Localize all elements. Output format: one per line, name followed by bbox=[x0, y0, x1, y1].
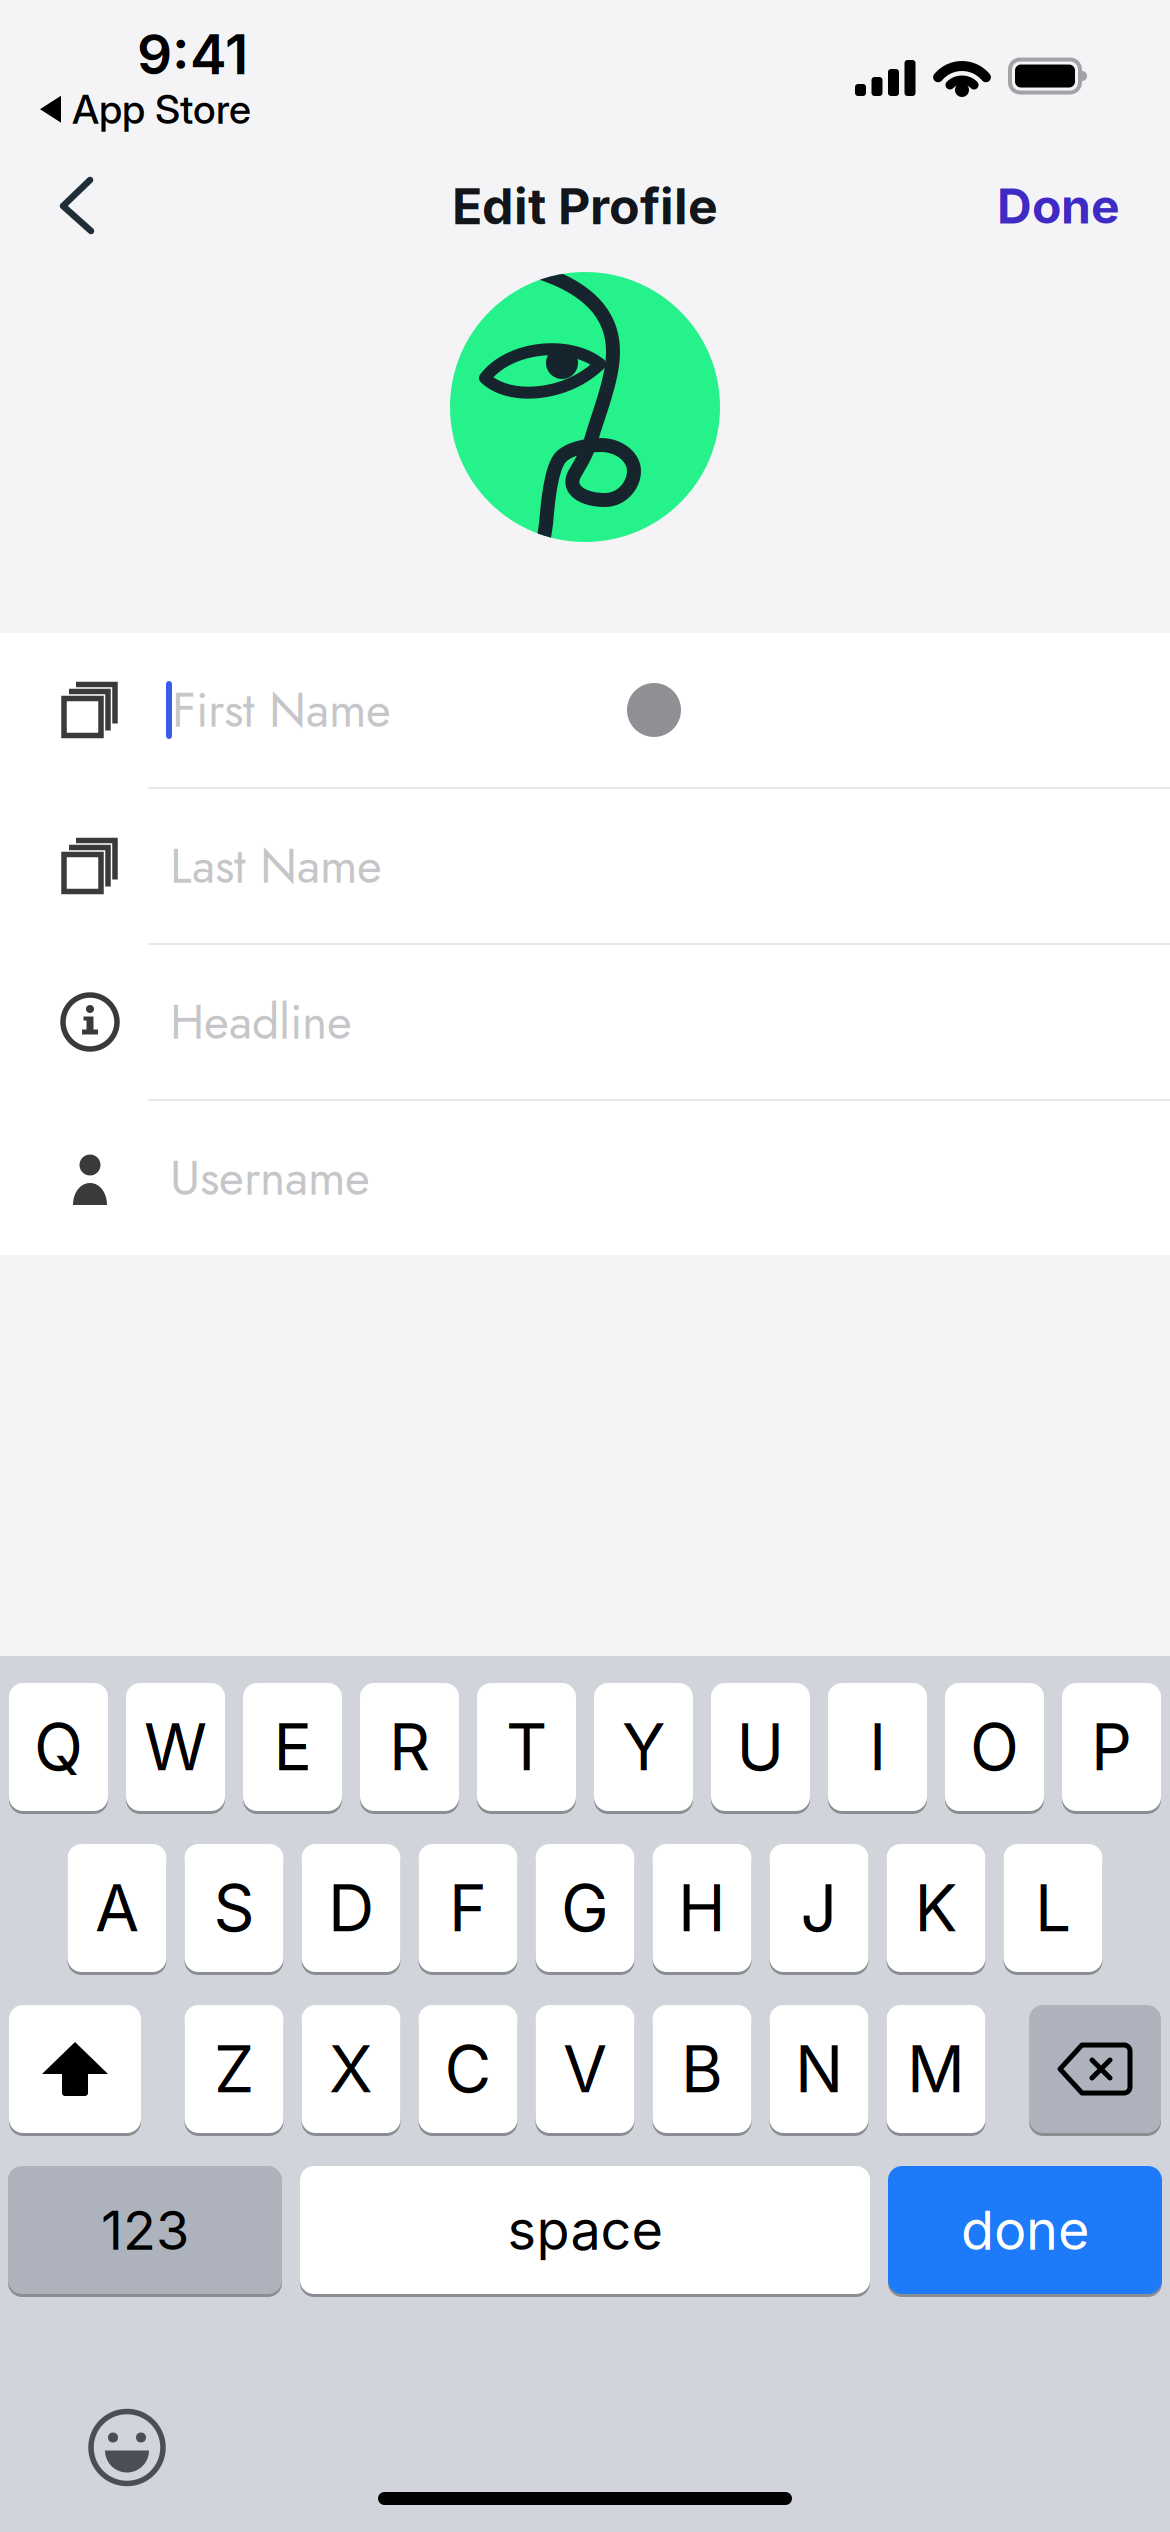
button[interactable]: Done bbox=[997, 161, 1170, 251]
button[interactable]: P bbox=[1062, 1683, 1161, 1811]
button[interactable]: V bbox=[535, 2005, 634, 2133]
staticText: space bbox=[507, 2197, 662, 2263]
button[interactable]: A bbox=[67, 1844, 166, 1972]
button[interactable]: Last Name bbox=[0, 789, 1170, 943]
button[interactable]: K bbox=[886, 1844, 985, 1972]
button[interactable]: J bbox=[769, 1844, 868, 1972]
staticText: U bbox=[736, 1708, 784, 1786]
staticText: F bbox=[449, 1869, 487, 1947]
button[interactable]: B bbox=[652, 2005, 751, 2133]
button[interactable]: Emoji bbox=[0, 2340, 164, 2484]
button[interactable]: H bbox=[652, 1844, 751, 1972]
staticText: N bbox=[795, 2030, 843, 2108]
button[interactable]: First Name bbox=[0, 633, 1170, 787]
staticText: X bbox=[329, 2030, 373, 2108]
staticText: I bbox=[869, 1708, 886, 1786]
staticText: Username bbox=[170, 1143, 370, 1213]
button[interactable]: Back bbox=[0, 160, 92, 252]
staticText: P bbox=[1091, 1708, 1132, 1786]
staticText: W bbox=[144, 1708, 207, 1786]
staticText: O bbox=[970, 1708, 1019, 1786]
button[interactable]: Y bbox=[594, 1683, 693, 1811]
staticText: 9:41 bbox=[137, 21, 248, 87]
button[interactable]: L bbox=[1003, 1844, 1102, 1972]
staticText: 123 bbox=[101, 2197, 189, 2263]
button[interactable]: Headline bbox=[0, 945, 1170, 1099]
button[interactable]: D bbox=[301, 1844, 400, 1972]
staticText: B bbox=[681, 2030, 723, 2108]
button[interactable]: R bbox=[360, 1683, 459, 1811]
staticText: A bbox=[95, 1869, 139, 1947]
button[interactable]: U bbox=[711, 1683, 810, 1811]
button[interactable]: E bbox=[243, 1683, 342, 1811]
staticText: C bbox=[444, 2030, 491, 2108]
staticText: Edit Profile bbox=[452, 176, 718, 236]
button[interactable]: M bbox=[886, 2005, 985, 2133]
button[interactable]: X bbox=[301, 2005, 400, 2133]
button[interactable]: C bbox=[418, 2005, 517, 2133]
staticText: H bbox=[678, 1869, 726, 1947]
staticText: M bbox=[907, 2030, 965, 2108]
staticText: Headline bbox=[170, 987, 352, 1057]
button[interactable]: space bbox=[300, 2166, 870, 2294]
button[interactable]: 123 bbox=[8, 2166, 282, 2294]
button[interactable]: Shift bbox=[9, 2005, 141, 2133]
staticText: K bbox=[914, 1869, 957, 1947]
staticText: Z bbox=[214, 2030, 254, 2108]
staticText: G bbox=[561, 1869, 609, 1947]
button[interactable]: done bbox=[888, 2166, 1162, 2294]
button[interactable]: Z bbox=[184, 2005, 283, 2133]
staticText: L bbox=[1035, 1869, 1071, 1947]
staticText: T bbox=[506, 1708, 547, 1786]
button[interactable]: W bbox=[126, 1683, 225, 1811]
button[interactable]: O bbox=[945, 1683, 1044, 1811]
button[interactable]: App Store bbox=[40, 85, 251, 133]
staticText: Done bbox=[997, 177, 1120, 235]
staticText: Y bbox=[622, 1708, 665, 1786]
button[interactable]: N bbox=[769, 2005, 868, 2133]
button[interactable]: Delete bbox=[1029, 2005, 1161, 2133]
staticText: Last Name bbox=[170, 831, 382, 901]
button[interactable]: Q bbox=[9, 1683, 108, 1811]
button[interactable]: Username bbox=[0, 1101, 1170, 1255]
button[interactable]: I bbox=[828, 1683, 927, 1811]
button[interactable]: F bbox=[418, 1844, 517, 1972]
staticText: V bbox=[563, 2030, 607, 2108]
staticText: done bbox=[961, 2197, 1089, 2263]
staticText: First Name bbox=[172, 675, 391, 745]
staticText: Q bbox=[34, 1708, 83, 1786]
button[interactable]: S bbox=[184, 1844, 283, 1972]
staticText: App Store bbox=[72, 85, 251, 133]
staticText: E bbox=[273, 1708, 311, 1786]
button[interactable]: G bbox=[535, 1844, 634, 1972]
staticText: R bbox=[389, 1708, 430, 1786]
staticText: S bbox=[213, 1869, 254, 1947]
button[interactable]: T bbox=[477, 1683, 576, 1811]
staticText: D bbox=[328, 1869, 374, 1947]
staticText: J bbox=[800, 1869, 837, 1947]
